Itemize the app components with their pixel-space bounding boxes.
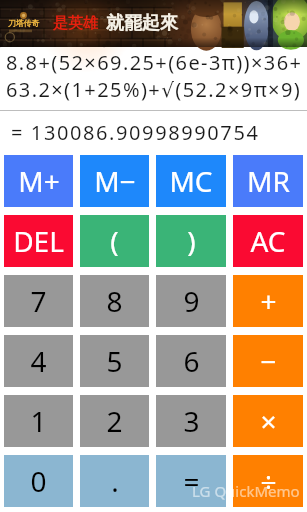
button[interactable]: Advertisement banner (0, 0, 307, 47)
staticText: 9 (183, 282, 200, 320)
button[interactable]: 1 (4, 395, 73, 447)
staticText: = 130086.90998990754 (11, 119, 260, 146)
staticText: 7 (30, 282, 47, 320)
button[interactable]: Delete (4, 215, 73, 267)
staticText: 就罷起來 (106, 12, 178, 35)
button[interactable]: Memory clear (156, 155, 226, 207)
button[interactable]: Memory recall (233, 155, 303, 207)
staticText: . (111, 462, 119, 500)
staticText: 刀塔传奇 (8, 18, 40, 28)
button[interactable]: Memory add (4, 155, 73, 207)
staticText: 是英雄 (53, 14, 98, 33)
button[interactable]: Divide (233, 455, 303, 507)
button[interactable]: 8 (80, 275, 149, 327)
staticText: 8.8+(52×69.25+(6e-3π))×36+ 63.2×(1+25%)+… (6, 49, 303, 103)
staticText: ÷ (260, 462, 277, 500)
staticText: = (183, 462, 200, 500)
button[interactable]: Multiply (233, 395, 303, 447)
button[interactable]: 9 (156, 275, 226, 327)
staticText: LG QuickMemo (192, 481, 300, 501)
button[interactable]: Plus (233, 275, 303, 327)
staticText: 2 (106, 402, 123, 440)
staticText: 5 (106, 342, 123, 380)
staticText: × (260, 402, 277, 440)
button[interactable]: 0 (4, 455, 73, 507)
staticText: MC (169, 162, 213, 200)
staticText: 1 (30, 402, 47, 440)
staticText: − (260, 342, 277, 380)
button[interactable]: All clear (233, 215, 303, 267)
staticText: 4 (30, 342, 47, 380)
button[interactable]: Memory subtract (80, 155, 149, 207)
button[interactable]: 5 (80, 335, 149, 387)
button[interactable]: Equals (156, 455, 226, 507)
staticText: DEL (13, 222, 64, 260)
staticText: M− (94, 162, 136, 200)
button[interactable]: Minus (233, 335, 303, 387)
staticText: 0 (30, 462, 47, 500)
button[interactable]: 4 (4, 335, 73, 387)
staticText: + (260, 282, 277, 320)
button[interactable]: 7 (4, 275, 73, 327)
staticText: AC (250, 222, 286, 260)
staticText: 6 (183, 342, 200, 380)
button[interactable]: Decimal point (80, 455, 149, 507)
button[interactable]: 3 (156, 395, 226, 447)
button[interactable]: 2 (80, 395, 149, 447)
staticText: MR (247, 162, 290, 200)
staticText: ( (110, 222, 119, 260)
staticText: 8 (106, 282, 123, 320)
staticText: M+ (18, 162, 60, 200)
staticText: ) (187, 222, 196, 260)
button[interactable]: 6 (156, 335, 226, 387)
button[interactable]: Close parenthesis (156, 215, 226, 267)
staticText: 3 (183, 402, 200, 440)
button[interactable]: Open parenthesis (80, 215, 149, 267)
